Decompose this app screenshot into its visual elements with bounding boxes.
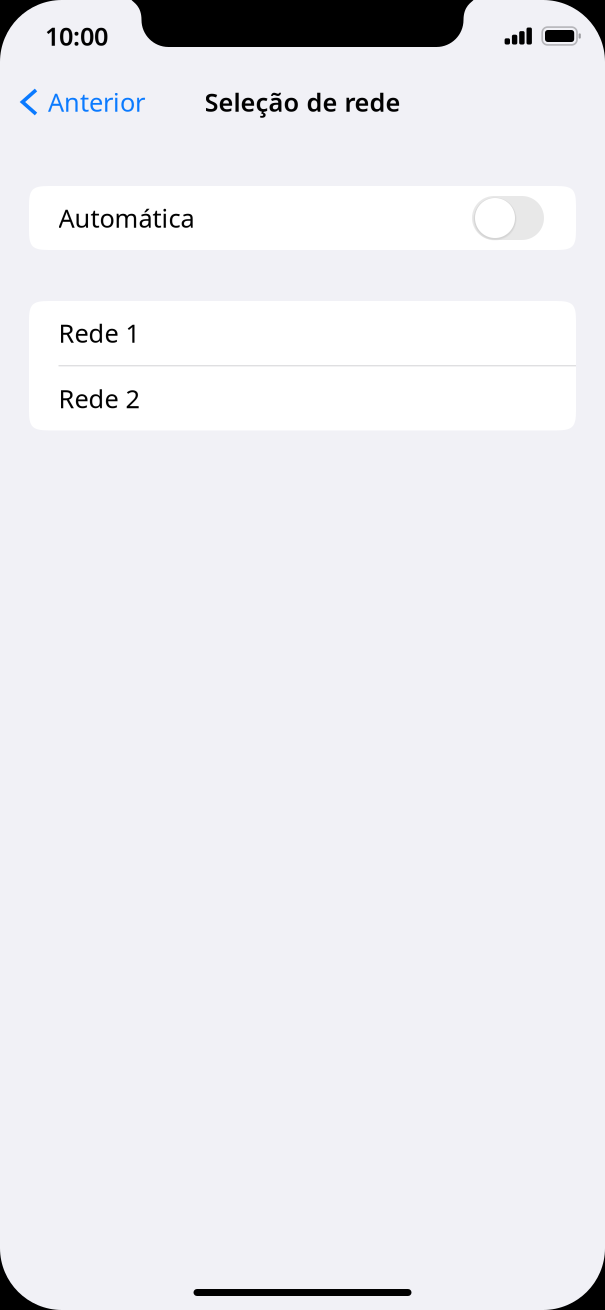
button[interactable]: Anterior xyxy=(0,76,159,128)
staticText: 10:00 xyxy=(45,19,108,53)
staticText: Seleção de rede xyxy=(204,85,400,119)
button[interactable]: Rede 2 xyxy=(29,366,576,430)
staticText: Automática xyxy=(58,201,194,235)
staticText: Rede 1 xyxy=(58,316,139,350)
staticText: Rede 2 xyxy=(58,382,139,415)
button[interactable]: Rede 1 xyxy=(29,301,576,365)
staticText: Anterior xyxy=(48,85,145,119)
button[interactable]: Automática, desativado xyxy=(472,196,544,240)
